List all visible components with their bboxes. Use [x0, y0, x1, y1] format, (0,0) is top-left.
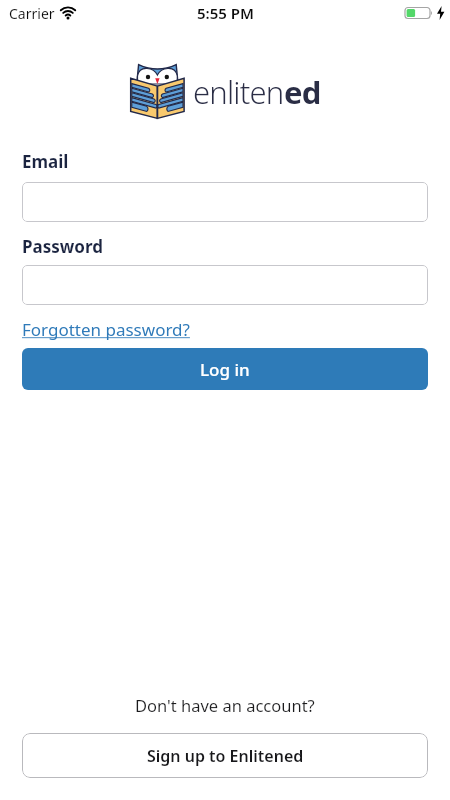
- button[interactable]: Sign up to Enlitened: [22, 733, 428, 778]
- staticText: enliten: [193, 71, 284, 113]
- staticText: Password: [22, 235, 103, 258]
- staticText: Sign up to Enlitened: [147, 745, 304, 767]
- button[interactable]: Forgotten password?: [22, 318, 190, 341]
- staticText: 5:55 PM: [197, 3, 254, 23]
- staticText: Carrier: [9, 4, 55, 23]
- button[interactable]: Log in: [22, 348, 428, 390]
- staticText: Don't have an account?: [135, 694, 315, 716]
- button[interactable]: [22, 182, 428, 222]
- staticText: Email: [22, 150, 69, 173]
- staticText: Log in: [200, 358, 250, 381]
- button[interactable]: [22, 265, 428, 305]
- staticText: ed: [284, 71, 321, 113]
